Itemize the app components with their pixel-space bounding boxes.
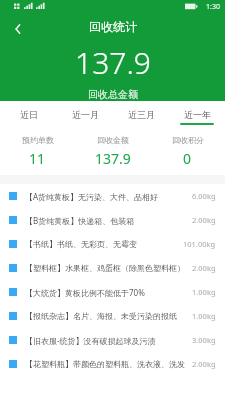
button[interactable]: 【花塑料瓶】带颜色的塑料瓶、洗衣液、洗发 bbox=[0, 352, 225, 376]
staticText: 预约单数 bbox=[22, 135, 54, 145]
staticText: 【A货纯黄板】无污染、大件、品相好 bbox=[25, 191, 188, 202]
button[interactable]: 近一月 bbox=[57, 101, 113, 127]
button[interactable]: 【A货纯黄板】无污染、大件、品相好 bbox=[0, 184, 225, 208]
staticText: 回收总金额 bbox=[88, 88, 138, 101]
staticText: 近三月 bbox=[128, 109, 155, 120]
staticText: 6.00kg bbox=[192, 191, 216, 201]
button[interactable]: 【旧衣服-统货】没有破损起球及污渍 bbox=[0, 328, 225, 352]
staticText: 0 bbox=[183, 149, 192, 168]
staticText: 2.00kg bbox=[192, 359, 216, 369]
button[interactable]: 近三月 bbox=[113, 101, 169, 127]
staticText: 近一月 bbox=[72, 109, 99, 120]
button[interactable]: 【塑料框】水果框、鸡蛋框（除黑色塑料框） bbox=[0, 256, 225, 280]
staticText: 101.00kg bbox=[183, 239, 216, 249]
staticText: 137.9 bbox=[95, 149, 131, 168]
button[interactable]: 近一年 bbox=[169, 101, 225, 127]
button[interactable]: 【B货纯黄板】快递箱、包装箱 bbox=[0, 208, 225, 232]
staticText: 【大统货】黄板比例不能低于70% bbox=[25, 287, 188, 298]
staticText: 近日 bbox=[20, 109, 38, 120]
button[interactable]: 近日 bbox=[0, 101, 57, 127]
staticText: 【B货纯黄板】快递箱、包装箱 bbox=[25, 215, 188, 226]
staticText: 回收统计 bbox=[89, 19, 137, 34]
staticText: 近一年 bbox=[184, 109, 211, 120]
staticText: 11 bbox=[29, 149, 46, 168]
staticText: 2.00kg bbox=[192, 215, 216, 225]
staticText: 1.00kg bbox=[192, 287, 216, 297]
staticText: 137.9 bbox=[75, 42, 151, 83]
staticText: 【报纸杂志】名片、海报、未受污染的报纸 bbox=[25, 311, 188, 321]
staticText: 【书纸】书纸、无彩页、无霉变 bbox=[25, 239, 179, 249]
button[interactable]: Back bbox=[4, 15, 32, 43]
staticText: 2.00kg bbox=[192, 263, 216, 273]
staticText: 回收积分 bbox=[172, 135, 204, 145]
staticText: 回收金额 bbox=[97, 135, 129, 145]
button[interactable]: 【报纸杂志】名片、海报、未受污染的报纸 bbox=[0, 304, 225, 328]
staticText: 1:30 bbox=[206, 2, 220, 12]
staticText: 【塑料框】水果框、鸡蛋框（除黑色塑料框） bbox=[25, 263, 188, 273]
button[interactable]: 【大统货】黄板比例不能低于70% bbox=[0, 280, 225, 304]
staticText: 3.00kg bbox=[192, 335, 216, 345]
staticText: 1.00kg bbox=[192, 311, 216, 321]
staticText: 【旧衣服-统货】没有破损起球及污渍 bbox=[25, 335, 188, 346]
button[interactable]: 【书纸】书纸、无彩页、无霉变 bbox=[0, 232, 225, 256]
staticText: 【花塑料瓶】带颜色的塑料瓶、洗衣液、洗发 bbox=[25, 359, 188, 369]
